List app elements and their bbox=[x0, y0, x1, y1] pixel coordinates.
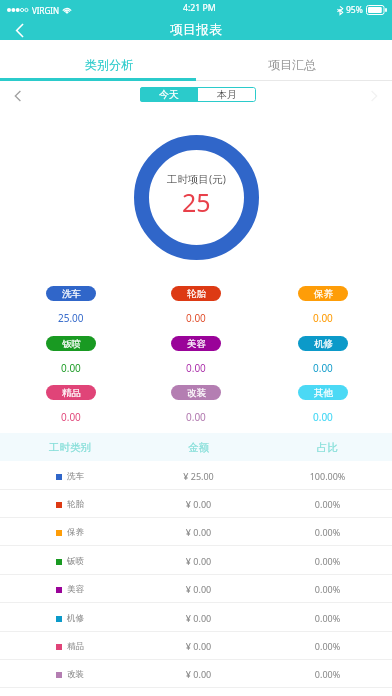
staticText: VIRGIN bbox=[32, 5, 60, 16]
staticText: 0.00% bbox=[263, 612, 392, 624]
staticText: 0.00 bbox=[313, 311, 333, 325]
button[interactable]: 精品 bbox=[46, 385, 96, 400]
staticText: 类别分析 bbox=[85, 57, 133, 72]
staticText: 钣喷 bbox=[67, 556, 84, 567]
staticText: ¥ 0.00 bbox=[134, 555, 263, 567]
staticText: 项目报表 bbox=[170, 21, 222, 37]
staticText: 轮胎 bbox=[187, 288, 206, 300]
staticText: 工时项目(元) bbox=[167, 172, 226, 186]
staticText: 机修 bbox=[67, 613, 84, 624]
staticText: ¥ 0.00 bbox=[134, 583, 263, 595]
staticText: 其他 bbox=[314, 387, 333, 399]
staticText: ¥ 25.00 bbox=[134, 470, 263, 482]
button[interactable]: 项目汇总 bbox=[196, 40, 392, 81]
button[interactable]: 精品 bbox=[0, 632, 392, 660]
staticText: 0.00% bbox=[263, 668, 392, 680]
staticText: 0.00% bbox=[263, 640, 392, 652]
staticText: 25 bbox=[182, 185, 211, 219]
staticText: 轮胎 bbox=[67, 499, 84, 510]
button[interactable]: 改装 bbox=[0, 660, 392, 688]
staticText: 洗车 bbox=[62, 288, 81, 300]
staticText: 美容 bbox=[67, 584, 84, 595]
staticText: 0.00 bbox=[186, 311, 206, 325]
button[interactable]: 洗车 bbox=[0, 462, 392, 490]
staticText: 占比 bbox=[263, 441, 392, 454]
staticText: 精品 bbox=[62, 387, 81, 399]
button[interactable]: 保养 bbox=[0, 518, 392, 546]
staticText: 保养 bbox=[67, 527, 84, 538]
staticText: 工时类别 bbox=[6, 441, 134, 454]
button[interactable]: 今天 bbox=[140, 87, 198, 102]
button[interactable]: 本月 bbox=[198, 87, 256, 102]
staticText: 0.00% bbox=[263, 526, 392, 538]
button[interactable]: 机修 bbox=[0, 604, 392, 632]
staticText: 0.00 bbox=[186, 361, 206, 375]
staticText: 0.00% bbox=[263, 555, 392, 567]
button[interactable]: 机修 bbox=[298, 336, 348, 351]
staticText: ¥ 0.00 bbox=[134, 612, 263, 624]
staticText: ¥ 0.00 bbox=[134, 498, 263, 510]
button[interactable]: 轮胎 bbox=[0, 490, 392, 518]
staticText: 0.00 bbox=[61, 410, 81, 424]
staticText: 金额 bbox=[134, 441, 263, 454]
staticText: 美容 bbox=[187, 338, 206, 350]
staticText: 本月 bbox=[217, 88, 237, 101]
staticText: 4:21 PM bbox=[183, 2, 216, 14]
staticText: 今天 bbox=[159, 88, 179, 101]
staticText: 0.00% bbox=[263, 583, 392, 595]
staticText: 精品 bbox=[67, 641, 84, 652]
button[interactable]: 钣喷 bbox=[46, 336, 96, 351]
button[interactable]: 改装 bbox=[171, 385, 221, 400]
staticText: 改装 bbox=[67, 669, 84, 680]
button[interactable]: 美容 bbox=[171, 336, 221, 351]
staticText: 0.00 bbox=[61, 361, 81, 375]
staticText: 100.00% bbox=[263, 470, 392, 482]
staticText: 0.00% bbox=[263, 498, 392, 510]
staticText: 0.00 bbox=[186, 410, 206, 424]
staticText: ¥ 0.00 bbox=[134, 640, 263, 652]
staticText: 机修 bbox=[314, 338, 333, 350]
button[interactable]: 美容 bbox=[0, 575, 392, 603]
staticText: 0.00 bbox=[313, 410, 333, 424]
staticText: 0.00 bbox=[313, 361, 333, 375]
button[interactable]: Previous period bbox=[0, 81, 36, 110]
button[interactable]: 钣喷 bbox=[0, 547, 392, 575]
button[interactable]: 洗车 bbox=[46, 286, 96, 301]
button[interactable]: 轮胎 bbox=[171, 286, 221, 301]
staticText: ¥ 0.00 bbox=[134, 526, 263, 538]
staticText: 钣喷 bbox=[62, 338, 81, 350]
staticText: 保养 bbox=[314, 288, 333, 300]
staticText: ¥ 0.00 bbox=[134, 668, 263, 680]
button[interactable]: 类别分析 bbox=[0, 40, 196, 81]
staticText: 项目汇总 bbox=[268, 57, 316, 72]
button[interactable]: 保养 bbox=[298, 286, 348, 301]
button[interactable]: 其他 bbox=[298, 385, 348, 400]
staticText: 改装 bbox=[187, 387, 206, 399]
staticText: 25.00 bbox=[58, 311, 84, 325]
button[interactable]: Back bbox=[0, 20, 40, 40]
staticText: 洗车 bbox=[67, 471, 84, 482]
staticText: 95% bbox=[346, 4, 363, 16]
